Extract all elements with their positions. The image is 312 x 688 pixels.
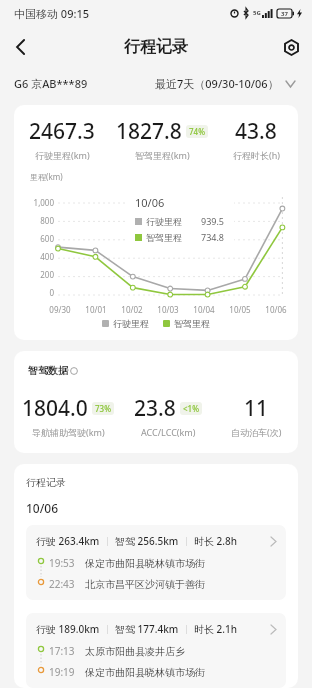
- staticText: 10/06: [26, 500, 59, 516]
- staticText: 2467.3: [29, 117, 95, 146]
- staticText: 1827.8: [116, 117, 182, 146]
- staticText: ACC/LCC(km): [141, 426, 196, 438]
- button[interactable]: G6 京AB***89: [14, 76, 88, 91]
- staticText: 800: [40, 215, 54, 226]
- staticText: 时长 2.1h: [194, 622, 238, 636]
- staticText: 09/30: [42, 304, 78, 315]
- staticText: 19:53: [49, 556, 75, 570]
- staticText: 行程记录: [26, 476, 66, 489]
- button[interactable]: Back: [0, 26, 42, 68]
- staticText: 行驶里程: [146, 216, 182, 227]
- staticText: 17:13: [49, 644, 75, 658]
- staticText: 保定市曲阳县晓林镇市场街: [85, 666, 205, 679]
- staticText: 734.8: [201, 231, 225, 243]
- staticText: 智驾里程(km): [135, 149, 190, 161]
- staticText: 10/06: [258, 304, 294, 315]
- staticText: 10/01: [78, 304, 114, 315]
- button[interactable]: 行驶 263.4km: [26, 525, 286, 600]
- staticText: 保定市曲阳县晓林镇市场街: [85, 557, 205, 570]
- staticText: 43.8: [235, 117, 277, 146]
- staticText: 600: [40, 233, 54, 244]
- staticText: 1804.0: [22, 394, 88, 423]
- staticText: 74%: [189, 126, 205, 137]
- staticText: 太原市阳曲县凌井店乡: [85, 645, 185, 658]
- staticText: 10/02: [114, 304, 150, 315]
- button[interactable]: Settings: [270, 26, 312, 68]
- staticText: <1%: [183, 403, 199, 414]
- staticText: 时长 2.8h: [194, 534, 238, 548]
- staticText: 10/06: [135, 195, 165, 210]
- staticText: 5G: [253, 9, 261, 17]
- staticText: 智驾 256.5km: [115, 534, 179, 548]
- staticText: 智驾数据: [28, 364, 68, 377]
- staticText: G6 京AB***89: [14, 76, 88, 91]
- button[interactable]: 最近7天（09/30-10/06）: [155, 76, 295, 91]
- staticText: 最近7天（09/30-10/06）: [155, 76, 279, 91]
- staticText: 939.5: [201, 215, 225, 227]
- staticText: 10/05: [222, 304, 258, 315]
- staticText: 11: [244, 394, 269, 423]
- staticText: 行驶里程(km): [35, 149, 90, 161]
- staticText: 智驾里程: [146, 232, 182, 243]
- staticText: 导航辅助驾驶(km): [32, 426, 105, 438]
- staticText: 北京市昌平区沙河镇于善街: [85, 578, 205, 591]
- staticText: 自动泊车(次): [231, 426, 282, 438]
- staticText: 行驶 189.0km: [36, 622, 100, 636]
- staticText: 37: [281, 10, 288, 18]
- staticText: 中国移动 09:15: [14, 6, 90, 21]
- staticText: 智驾 177.4km: [115, 622, 179, 636]
- staticText: 行程记录: [124, 37, 188, 57]
- staticText: 行驶 263.4km: [36, 534, 100, 548]
- staticText: 里程(km): [30, 171, 63, 182]
- staticText: 400: [40, 251, 54, 262]
- staticText: 73%: [95, 403, 111, 414]
- staticText: 行程时长(h): [233, 149, 280, 161]
- staticText: 智驾里程: [174, 318, 210, 329]
- button[interactable]: 行驶 189.0km: [26, 613, 286, 688]
- staticText: 200: [40, 269, 54, 280]
- staticText: 23.8: [134, 394, 176, 423]
- staticText: 10/03: [150, 304, 186, 315]
- staticText: 10/04: [186, 304, 222, 315]
- staticText: 行驶里程: [113, 318, 149, 329]
- staticText: 22:43: [49, 577, 75, 591]
- staticText: 19:19: [49, 665, 75, 679]
- staticText: 1,000: [33, 197, 54, 208]
- staticText: 0: [49, 287, 54, 298]
